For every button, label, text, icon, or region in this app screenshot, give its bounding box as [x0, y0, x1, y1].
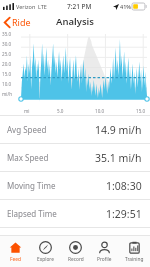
- staticText: Record: [68, 256, 84, 263]
- staticText: Training: [125, 256, 144, 263]
- staticText: 20.0: [2, 61, 12, 67]
- staticText: Max Speed: [7, 152, 49, 163]
- staticText: Elapsed Time: [7, 208, 57, 219]
- staticText: Ride: [12, 16, 31, 28]
- button[interactable]: Ride: [0, 14, 37, 30]
- staticText: 1:29:51: [106, 207, 142, 221]
- button[interactable]: Training: [120, 239, 149, 265]
- staticText: 5.0: [57, 108, 64, 114]
- staticText: Explore: [37, 256, 54, 263]
- staticText: 35.1 mi/h: [95, 151, 142, 165]
- button[interactable]: Feed: [1, 239, 30, 265]
- staticText: 15.0: [2, 71, 12, 77]
- button[interactable]: Moving Time: [0, 172, 150, 199]
- staticText: 41%: [120, 3, 131, 10]
- staticText: 25.0: [2, 51, 12, 57]
- staticText: mi/h: [2, 91, 13, 97]
- staticText: mi: [24, 108, 30, 114]
- staticText: Moving Time: [7, 180, 56, 191]
- staticText: Avg Speed: [7, 124, 47, 135]
- staticText: LTE: [38, 3, 47, 10]
- staticText: 15.0: [136, 108, 146, 114]
- button[interactable]: Avg Speed: [0, 116, 150, 143]
- button[interactable]: Explore: [31, 239, 60, 265]
- staticText: 14.9 mi/h: [95, 123, 142, 137]
- button[interactable]: Profile: [90, 239, 119, 265]
- staticText: 30.0: [2, 41, 12, 47]
- staticText: 10.0: [2, 81, 12, 87]
- staticText: Analysis: [56, 15, 94, 28]
- staticText: 7:21 PM: [67, 2, 92, 11]
- staticText: Feed: [10, 256, 21, 263]
- staticText: 1:08:30: [106, 179, 142, 193]
- staticText: 35.0: [2, 31, 12, 37]
- staticText: Profile: [97, 256, 112, 263]
- button[interactable]: Elapsed Time: [0, 200, 150, 227]
- button[interactable]: Record: [61, 239, 90, 265]
- button[interactable]: Max Speed: [0, 144, 150, 171]
- staticText: 10.0: [95, 108, 105, 114]
- staticText: Verizon: [16, 3, 36, 10]
